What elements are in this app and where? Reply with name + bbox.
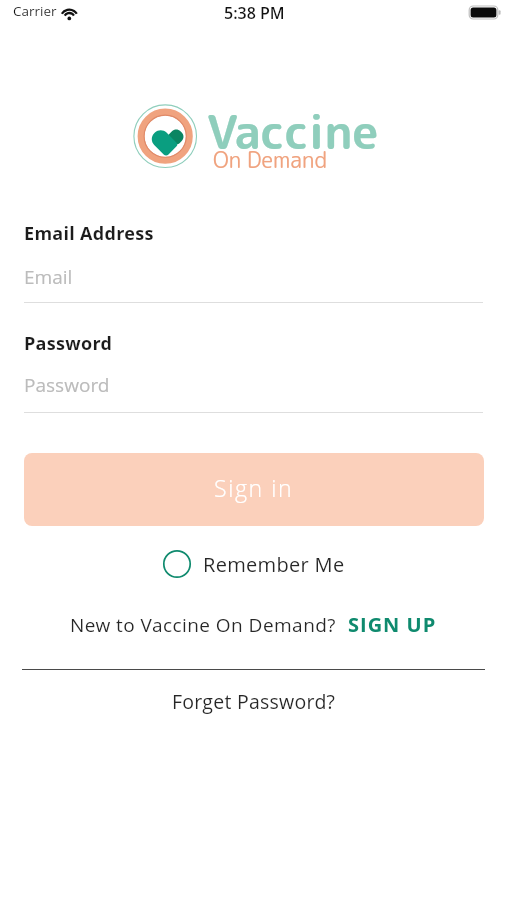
- staticText: Forget Password?: [172, 688, 336, 715]
- staticText: On Demand: [213, 144, 328, 175]
- staticText: Carrier: [13, 2, 57, 20]
- other: Wi-Fi signal: [60, 5, 80, 20]
- staticText: Password: [24, 331, 113, 356]
- staticText: New to Vaccine On Demand?: [70, 612, 336, 638]
- staticText: Remember Me: [203, 551, 345, 578]
- button[interactable]: Forget Password?: [172, 688, 336, 715]
- staticText: 5:38 PM: [224, 2, 285, 24]
- staticText: Email: [24, 264, 73, 290]
- other: Battery full: [468, 5, 502, 20]
- staticText: Vaccine: [207, 98, 379, 164]
- staticText: Email Address: [24, 221, 154, 246]
- staticText: Password: [24, 372, 110, 398]
- button[interactable]: Remember Me: [162, 549, 345, 579]
- staticText: Sign in: [214, 472, 294, 503]
- staticText: SIGN UP: [348, 611, 437, 638]
- button[interactable]: Sign in: [24, 453, 484, 526]
- button[interactable]: SIGN UP: [348, 611, 437, 638]
